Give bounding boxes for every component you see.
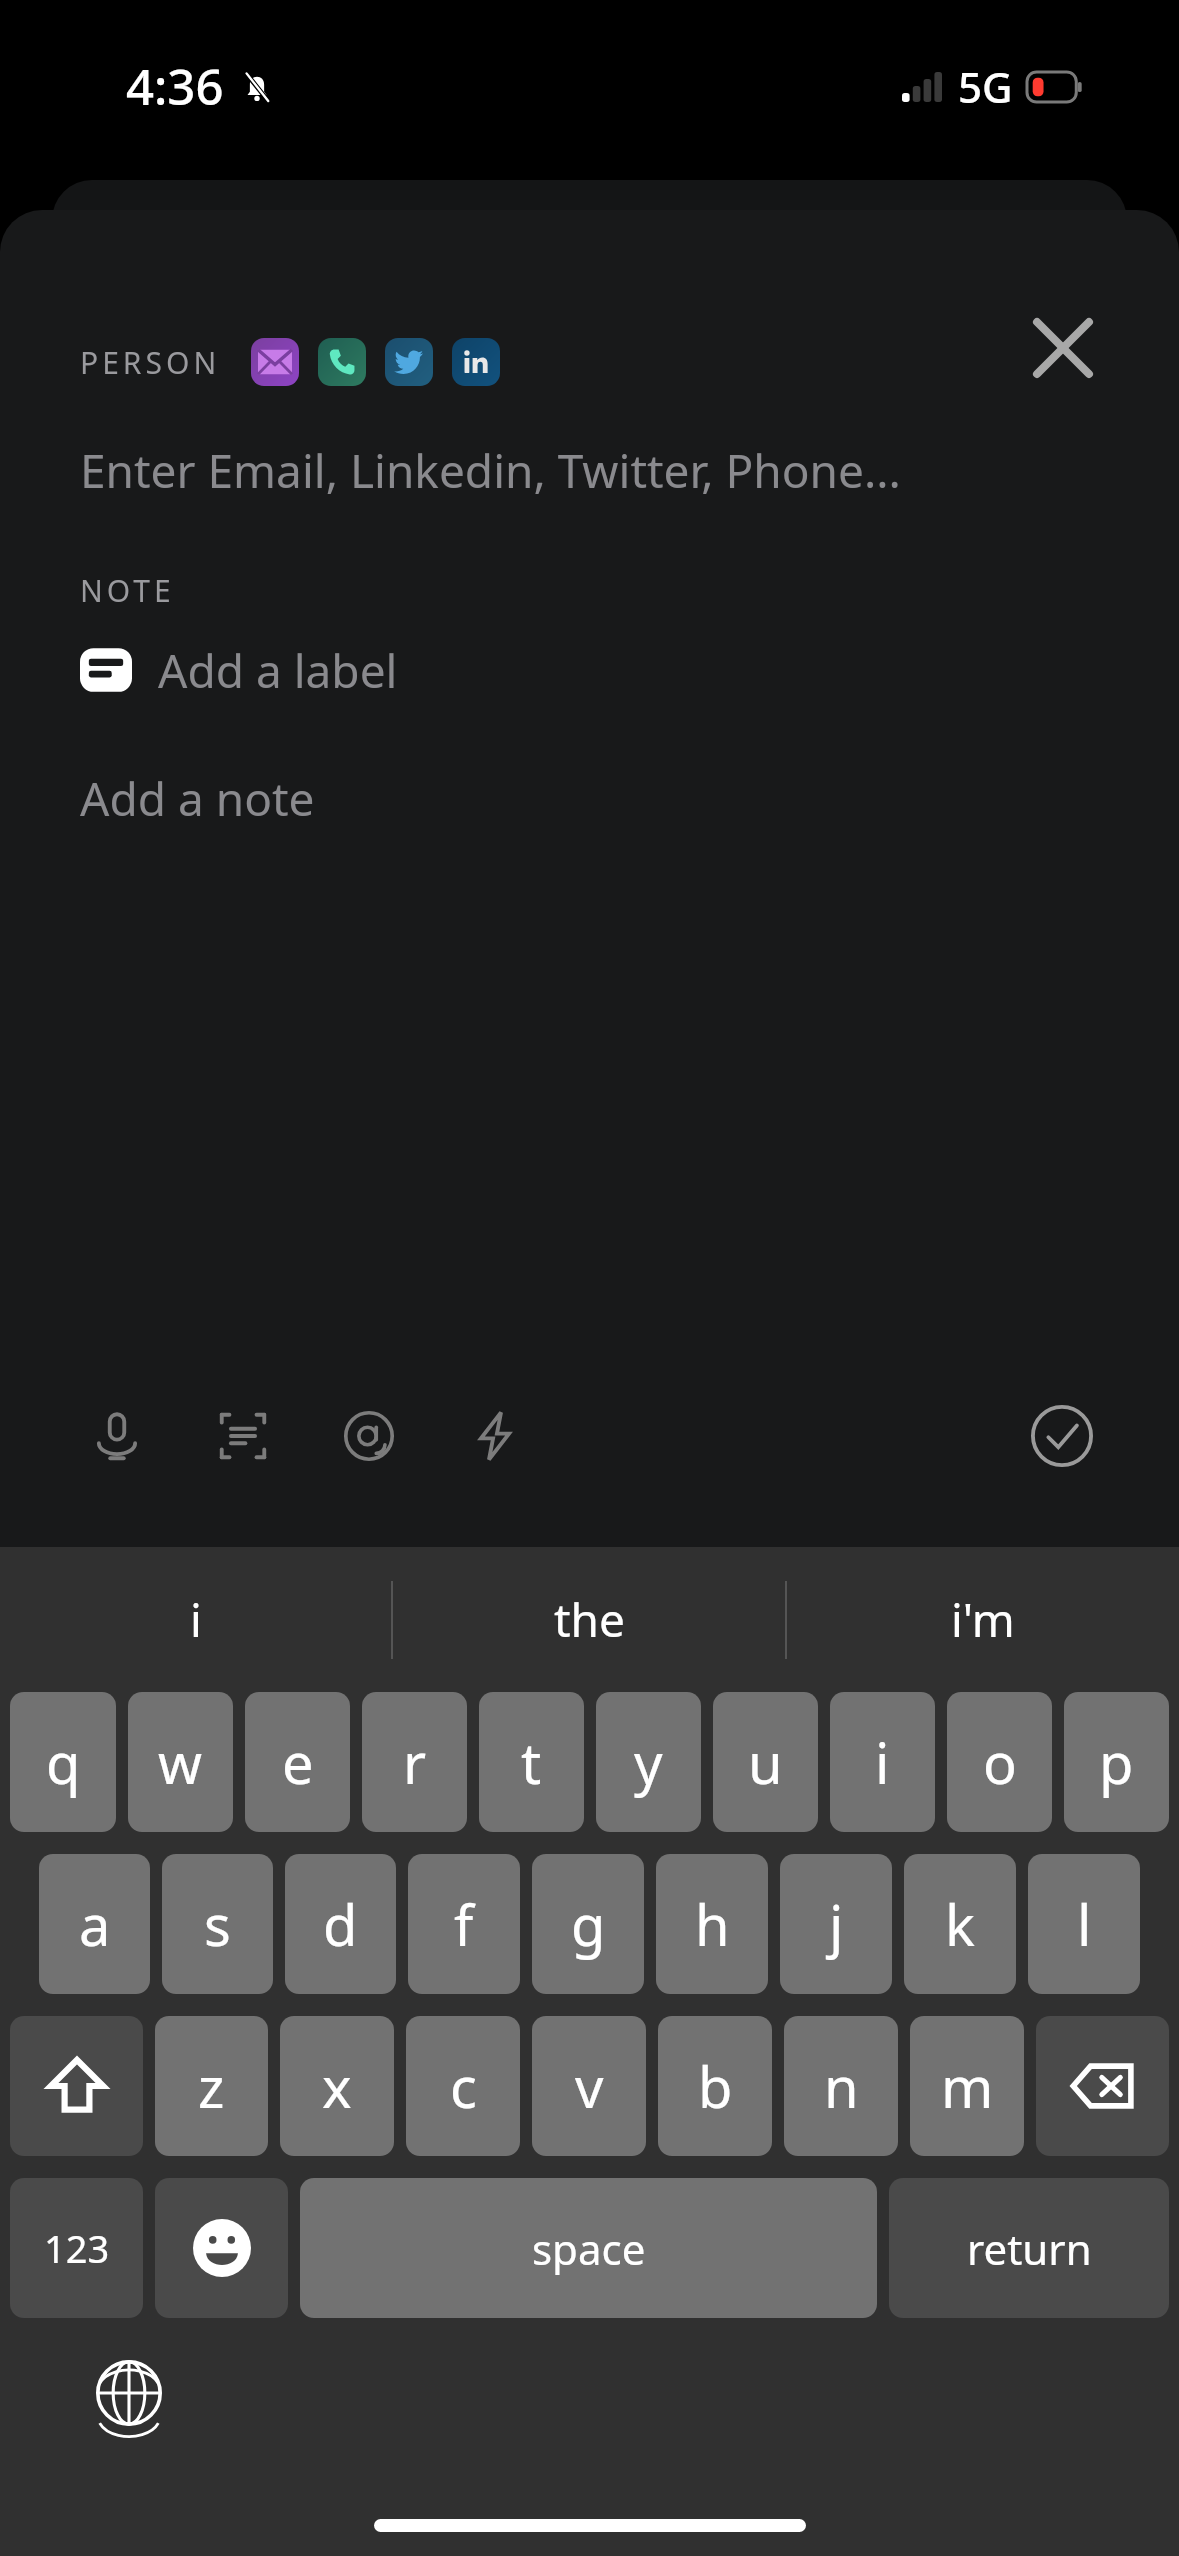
button[interactable]: Quick action: [440, 1381, 550, 1491]
button[interactable]: d: [285, 1854, 396, 1994]
button[interactable]: Contact method: [251, 338, 299, 386]
button[interactable]: Contact method: [452, 338, 500, 386]
button[interactable]: Shift: [10, 2016, 143, 2156]
staticText: x: [322, 2048, 352, 2124]
button[interactable]: r: [362, 1692, 467, 1832]
button[interactable]: j: [780, 1854, 892, 1994]
staticText: 5G: [958, 58, 1013, 115]
button[interactable]: Voice input: [62, 1381, 172, 1491]
button[interactable]: Done: [1007, 1381, 1117, 1491]
button[interactable]: c: [406, 2016, 520, 2156]
button[interactable]: 123: [10, 2178, 143, 2318]
button[interactable]: e: [245, 1692, 350, 1832]
staticText: Add a note: [80, 767, 315, 830]
staticText: w: [158, 1724, 203, 1800]
staticText: d: [323, 1886, 358, 1962]
button[interactable]: space: [300, 2178, 877, 2318]
staticText: n: [824, 2048, 859, 2124]
staticText: o: [983, 1724, 1017, 1800]
button[interactable]: b: [658, 2016, 772, 2156]
button[interactable]: Add a label: [80, 630, 398, 710]
button[interactable]: l: [1028, 1854, 1140, 1994]
staticText: m: [941, 2048, 994, 2124]
button[interactable]: the: [393, 1547, 785, 1692]
staticText: a: [79, 1886, 111, 1962]
button[interactable]: n: [784, 2016, 898, 2156]
button[interactable]: f: [408, 1854, 520, 1994]
staticText: t: [521, 1724, 542, 1800]
button[interactable]: z: [155, 2016, 268, 2156]
button[interactable]: Backspace: [1036, 2016, 1169, 2156]
button[interactable]: Mention: [314, 1381, 424, 1491]
button[interactable]: Change keyboard: [86, 2350, 172, 2436]
button[interactable]: t: [479, 1692, 584, 1832]
button[interactable]: i: [0, 1547, 391, 1692]
staticText: return: [967, 2220, 1092, 2277]
staticText: s: [204, 1886, 231, 1962]
staticText: u: [748, 1724, 783, 1800]
button[interactable]: k: [904, 1854, 1016, 1994]
staticText: PERSON: [80, 342, 221, 383]
staticText: c: [450, 2048, 477, 2124]
button[interactable]: i'm: [787, 1547, 1179, 1692]
button[interactable]: a: [39, 1854, 150, 1994]
button[interactable]: Scan text: [188, 1381, 298, 1491]
staticText: r: [403, 1724, 427, 1800]
staticText: k: [945, 1886, 975, 1962]
staticText: h: [695, 1886, 730, 1962]
staticText: 123: [44, 2222, 110, 2274]
button[interactable]: u: [713, 1692, 818, 1832]
staticText: p: [1099, 1724, 1134, 1800]
staticText: Add a label: [158, 639, 398, 702]
staticText: i: [875, 1724, 890, 1800]
button[interactable]: h: [656, 1854, 768, 1994]
button[interactable]: x: [280, 2016, 394, 2156]
button[interactable]: q: [10, 1692, 116, 1832]
button[interactable]: Contact method: [318, 338, 366, 386]
button[interactable]: i: [830, 1692, 935, 1832]
staticText: 4:36: [126, 53, 224, 120]
button[interactable]: s: [162, 1854, 273, 1994]
button[interactable]: y: [596, 1692, 701, 1832]
button[interactable]: Contact method: [385, 338, 433, 386]
button[interactable]: Close: [1009, 294, 1117, 402]
button[interactable]: p: [1064, 1692, 1169, 1832]
staticText: z: [198, 2048, 225, 2124]
staticText: g: [571, 1886, 606, 1962]
button[interactable]: m: [910, 2016, 1024, 2156]
staticText: v: [575, 2048, 604, 2124]
button[interactable]: return: [889, 2178, 1169, 2318]
staticText: Enter Email, Linkedin, Twitter, Phone...: [80, 439, 901, 502]
button[interactable]: Add a note: [80, 758, 1139, 838]
button[interactable]: Emoji: [155, 2178, 288, 2318]
staticText: e: [282, 1724, 314, 1800]
button[interactable]: v: [532, 2016, 646, 2156]
button[interactable]: o: [947, 1692, 1052, 1832]
staticText: NOTE: [80, 570, 175, 611]
staticText: f: [454, 1886, 474, 1962]
button[interactable]: w: [128, 1692, 233, 1832]
staticText: the: [554, 1588, 625, 1651]
staticText: i'm: [951, 1588, 1015, 1651]
staticText: i: [190, 1588, 202, 1651]
staticText: space: [532, 2220, 646, 2277]
staticText: b: [698, 2048, 733, 2124]
staticText: q: [46, 1724, 81, 1800]
button[interactable]: Enter Email, Linkedin, Twitter, Phone...: [80, 428, 1139, 512]
button[interactable]: g: [532, 1854, 644, 1994]
staticText: j: [829, 1886, 844, 1962]
staticText: y: [634, 1724, 663, 1800]
staticText: l: [1077, 1886, 1092, 1962]
